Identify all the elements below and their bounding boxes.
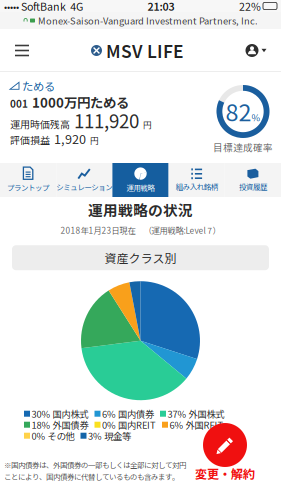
staticText: 37% 外国株式 [167, 407, 224, 420]
staticText: 2018年1月23日現在 （運用戦略:Level 7） [60, 224, 220, 236]
staticText: ••••• [4, 0, 19, 13]
staticText: 1000万円ためる [32, 92, 129, 112]
staticText: 運用戦略の状況 [88, 199, 193, 220]
button[interactable]: 変更・解約 [195, 423, 255, 479]
staticText: 001 [10, 96, 28, 111]
staticText: 円 [90, 134, 99, 146]
button[interactable]: Menu [0, 29, 44, 71]
button[interactable]: Account [231, 29, 281, 71]
staticText: 3% 現金等 [88, 429, 131, 442]
staticText: 22% [239, 0, 261, 14]
staticText: 円 [143, 118, 152, 131]
staticText: 0% 国内REIT [102, 418, 156, 431]
staticText: 4G [66, 0, 83, 14]
staticText: MSV LIFE [106, 38, 184, 63]
button[interactable]: 組み入れ銘柄 [169, 163, 225, 197]
staticText: Monex-Saison-Vanguard Investment Partner… [38, 14, 258, 27]
staticText: SoftBank [19, 0, 66, 14]
staticText: % [251, 110, 260, 124]
staticText: 21:03 [147, 0, 174, 14]
staticText: 変更・解約 [195, 465, 255, 482]
staticText: 1,920 [54, 129, 86, 148]
staticText: 投資履歴 [239, 181, 267, 192]
button[interactable]: プラントップ [0, 163, 56, 197]
staticText: 評価損益 [10, 132, 50, 147]
staticText: 組み入れ銘柄 [176, 181, 218, 192]
staticText: プラントップ [7, 182, 49, 193]
button[interactable]: シミュレーション [56, 163, 112, 197]
button[interactable]: 運用戦略 [112, 163, 169, 197]
staticText: 運用時価残高 [10, 116, 70, 131]
staticText: 運用戦略 [126, 182, 154, 193]
staticText: 30% 国内株式 [31, 407, 88, 420]
staticText: 6% 国内債券 [102, 407, 154, 420]
staticText: 18% 外国債券 [31, 418, 88, 431]
staticText: 6% 外国REIT [169, 418, 223, 431]
staticText: ことにより、国内債券に代替しているものも含みます。 [4, 471, 179, 482]
button[interactable]: 投資履歴 [225, 163, 281, 197]
staticText: 目標達成確率 [213, 140, 273, 154]
staticText: ためる [22, 78, 55, 94]
staticText: ※国内債券は、外国債券の一部もしくは全部に対して対円 [4, 459, 186, 470]
staticText: 111,920 [74, 106, 139, 133]
staticText: 0% その他 [31, 429, 74, 442]
staticText: 82 [225, 94, 251, 128]
staticText: シミュレーション [56, 182, 112, 192]
staticText: 資産クラス別 [104, 249, 176, 266]
